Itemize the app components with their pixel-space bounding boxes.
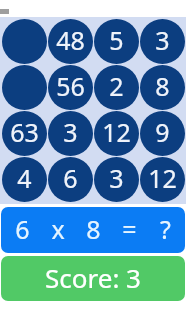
staticText: =: [122, 212, 137, 246]
button[interactable]: 12: [93, 110, 139, 156]
button[interactable]: Score: 3: [1, 256, 185, 301]
button[interactable]: 3: [47, 110, 93, 156]
button[interactable]: 6: [1, 207, 185, 253]
button[interactable]: 5: [93, 19, 139, 64]
staticText: Score: 3: [45, 260, 141, 295]
button[interactable]: 8: [139, 64, 185, 110]
button[interactable]: [1, 64, 47, 110]
button[interactable]: 12: [139, 156, 185, 202]
button[interactable]: 3: [139, 19, 185, 64]
button[interactable]: 63: [1, 110, 47, 156]
staticText: x: [51, 212, 65, 246]
staticText: 56: [56, 69, 85, 103]
staticText: 6: [63, 161, 78, 195]
staticText: 5: [109, 23, 124, 57]
button[interactable]: [1, 19, 47, 64]
button[interactable]: 6: [47, 156, 93, 202]
button[interactable]: 3: [93, 156, 139, 202]
staticText: 3: [63, 115, 78, 149]
staticText: 63: [10, 115, 39, 149]
staticText: 12: [102, 115, 131, 149]
staticText: 3: [109, 161, 124, 195]
button[interactable]: 9: [139, 110, 185, 156]
staticText: 6: [15, 212, 30, 246]
button[interactable]: 2: [93, 64, 139, 110]
staticText: 4: [17, 161, 32, 195]
button[interactable]: 48: [47, 19, 93, 64]
staticText: 2: [109, 69, 124, 103]
staticText: 8: [86, 212, 101, 246]
staticText: 3: [155, 23, 170, 57]
staticText: 8: [155, 69, 170, 103]
staticText: 12: [148, 161, 177, 195]
button[interactable]: 56: [47, 64, 93, 110]
staticText: 9: [155, 115, 170, 149]
staticText: ?: [160, 212, 171, 246]
staticText: 48: [56, 23, 85, 57]
button[interactable]: 4: [1, 156, 47, 202]
